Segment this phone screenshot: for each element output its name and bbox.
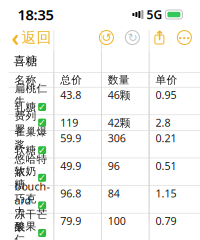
staticText: 59.9 [60, 131, 81, 145]
staticText: 0.95 [155, 88, 176, 102]
button[interactable]: ‹ [8, 18, 56, 57]
staticText: ✓ [38, 172, 46, 183]
staticText: 单价 [155, 73, 177, 86]
staticText: ‹ [12, 22, 20, 53]
staticText: 84 [108, 186, 120, 200]
staticText: ↑ [154, 28, 165, 43]
staticText: 1.15 [155, 186, 176, 200]
staticText: ••• [178, 31, 190, 44]
staticText: 悠哈特浓 [15, 153, 48, 179]
staticText: 轧糖 [15, 100, 37, 113]
staticText: 软奶糖 [15, 165, 37, 191]
staticText: 18:35 [18, 5, 54, 24]
staticText: bouchard [15, 179, 50, 207]
staticText: 冻干芒果 [15, 208, 48, 234]
staticText: 5G [146, 7, 162, 22]
staticText: ↻ [127, 31, 137, 44]
staticText: ↺ [101, 31, 111, 44]
staticText: 0.51 [155, 159, 176, 173]
staticText: 43.8 [60, 88, 81, 102]
staticText: 119 [60, 115, 78, 130]
staticText: ✓ [38, 228, 46, 238]
staticText: 96.8 [60, 186, 81, 200]
staticText: 总价 [60, 73, 82, 86]
staticText: 酸果仁 [15, 220, 37, 240]
staticText: 0.21 [155, 131, 176, 145]
staticText: 名称 [15, 73, 37, 86]
staticText: 喜糖 [14, 53, 38, 68]
staticText: ✓ [38, 102, 46, 112]
staticText: 2.8 [155, 115, 170, 130]
staticText: ✓ [38, 145, 46, 155]
button[interactable]: More [176, 29, 192, 45]
staticText: 306 [108, 131, 126, 145]
staticText: 软糖 [15, 144, 37, 157]
staticText: 100 [108, 214, 126, 228]
staticText: 0.79 [155, 214, 176, 228]
staticText: 49.9 [60, 159, 81, 173]
staticText: ✓ [38, 117, 46, 128]
button[interactable]: Redo [124, 29, 140, 45]
staticText: 返回 [22, 28, 52, 46]
button[interactable]: Share [152, 29, 166, 45]
staticText: 79.9 [60, 214, 81, 228]
staticText: 费列罗 [15, 109, 37, 136]
staticText: ✓ [38, 200, 46, 211]
button[interactable]: Undo [98, 29, 114, 45]
staticText: 96 [108, 159, 120, 173]
staticText: 46颗 [108, 88, 131, 102]
staticText: 扁桃仁牛 [15, 82, 48, 108]
staticText: 巧克力 [15, 192, 37, 218]
staticText: 42颗 [108, 115, 131, 130]
staticText: 雀巢爆浆 [15, 125, 48, 151]
staticText: 数量 [108, 73, 130, 86]
